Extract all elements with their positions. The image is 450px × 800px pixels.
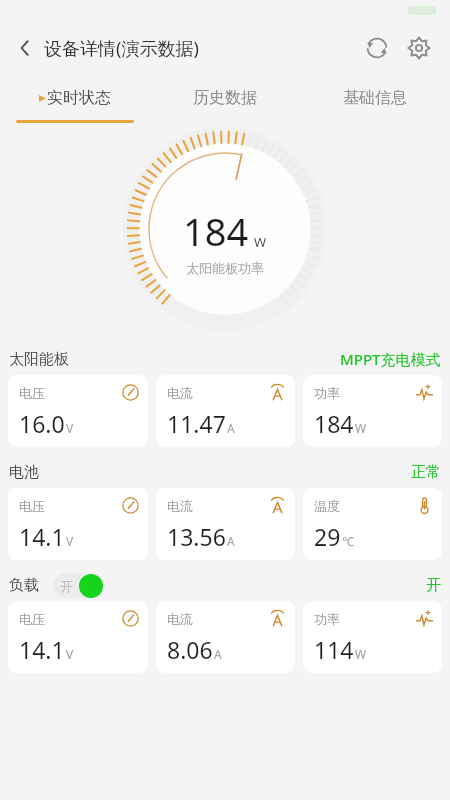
button[interactable]: 基础信息 [300, 76, 450, 120]
staticText: V [66, 533, 74, 549]
staticText: 11.47 [167, 408, 226, 439]
staticText: 电流 [167, 611, 193, 627]
button[interactable]: 历史数据 [150, 76, 300, 120]
staticText: 电流 [167, 498, 193, 514]
staticText: 14.1 [19, 521, 65, 552]
button[interactable]: 电压 [8, 601, 148, 673]
staticText: 太阳能板 [9, 350, 69, 369]
staticText: W [355, 420, 367, 436]
staticText: 8.06 [167, 634, 213, 665]
staticText: W [355, 646, 367, 662]
staticText: 114 [314, 634, 354, 665]
staticText: 电压 [19, 385, 45, 401]
staticText: V [66, 420, 74, 436]
staticText: 太阳能板功率 [186, 260, 264, 276]
staticText: 29 [314, 521, 341, 552]
staticText: A [227, 420, 235, 436]
staticText: ℃ [342, 533, 354, 549]
staticText: 开 [426, 576, 441, 595]
button[interactable]: 电压 [8, 375, 148, 447]
button[interactable]: 电流 [156, 488, 295, 560]
staticText: 184 [314, 408, 354, 439]
staticText: A [227, 533, 235, 549]
button[interactable]: Back [8, 31, 42, 65]
button[interactable]: 电压 [8, 488, 148, 560]
button[interactable]: 电流 [156, 375, 295, 447]
button[interactable]: 功率 [303, 375, 442, 447]
staticText: 14.1 [19, 634, 65, 665]
staticText: W [254, 233, 267, 251]
button[interactable]: Load power switch, on [53, 573, 105, 598]
staticText: 正常 [411, 463, 441, 482]
staticText: 电流 [167, 385, 193, 401]
staticText: 设备详情(演示数据) [44, 36, 199, 61]
staticText: 基础信息 [343, 88, 407, 108]
staticText: 184 [183, 205, 249, 257]
button[interactable]: Settings [398, 27, 440, 69]
staticText: 温度 [314, 498, 340, 514]
staticText: 13.56 [167, 521, 226, 552]
staticText: 开 [60, 578, 73, 594]
staticText: 功率 [314, 385, 340, 401]
staticText: V [66, 646, 74, 662]
button[interactable]: 实时状态 [0, 76, 150, 120]
staticText: 负载 [9, 576, 39, 595]
staticText: 电压 [19, 498, 45, 514]
staticText: MPPT充电模式 [340, 349, 441, 369]
staticText: A [214, 646, 222, 662]
button[interactable]: 电流 [156, 601, 295, 673]
staticText: 历史数据 [193, 88, 257, 108]
button[interactable]: 功率 [303, 601, 442, 673]
staticText: 16.0 [19, 408, 65, 439]
button[interactable]: Refresh [356, 27, 398, 69]
staticText: 功率 [314, 611, 340, 627]
staticText: 实时状态 [47, 88, 111, 108]
button[interactable]: 温度 [303, 488, 442, 560]
staticText: 电压 [19, 611, 45, 627]
staticText: 电池 [9, 463, 39, 482]
